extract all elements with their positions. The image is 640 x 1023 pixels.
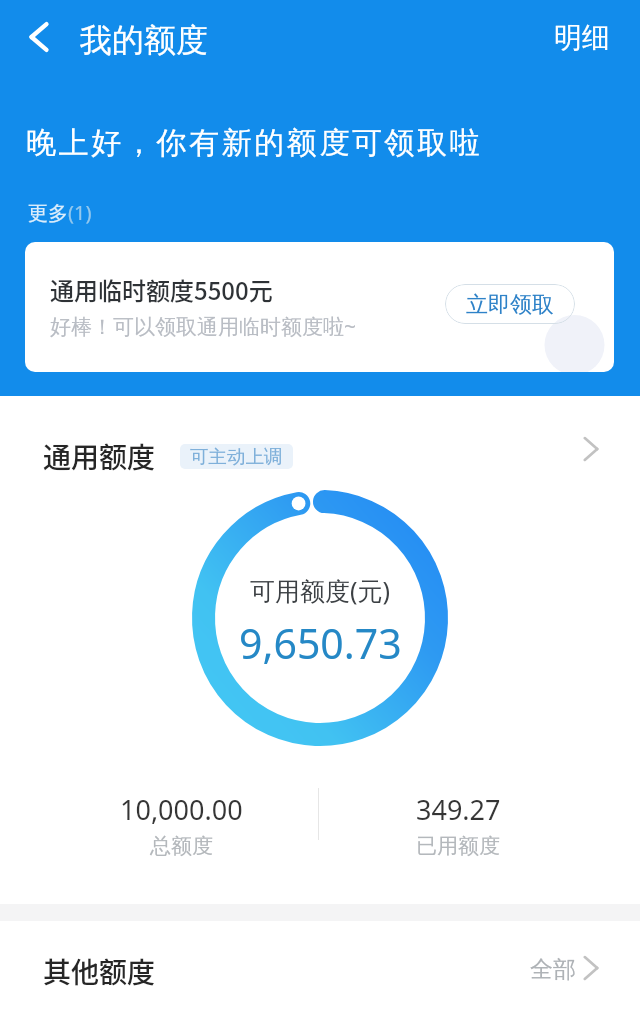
staticText: 通用额度 bbox=[43, 436, 156, 477]
button[interactable]: 其他额度 bbox=[0, 921, 640, 1023]
staticText: 全部 bbox=[530, 955, 576, 984]
other: View general credit limit bbox=[579, 437, 603, 461]
staticText: 其他额度 bbox=[43, 951, 156, 992]
staticText: 349.27 bbox=[416, 791, 501, 828]
other: View all other limits bbox=[579, 956, 603, 980]
staticText: 9,650.73 bbox=[239, 615, 402, 671]
button[interactable]: 通用额度 bbox=[0, 396, 640, 490]
staticText: (1) bbox=[68, 199, 92, 226]
staticText: 立即领取 bbox=[466, 291, 554, 319]
staticText: 我的额度 bbox=[80, 20, 208, 60]
staticText: 总额度 bbox=[150, 833, 213, 859]
button[interactable]: 明细 bbox=[530, 0, 640, 74]
button[interactable]: 通用临时额度5500元 bbox=[25, 242, 614, 372]
button[interactable]: 立即领取 bbox=[445, 284, 575, 324]
staticText: 可主动上调 bbox=[190, 445, 283, 468]
button[interactable]: Back bbox=[0, 0, 78, 74]
button[interactable]: 更多 bbox=[18, 191, 106, 234]
staticText: 通用临时额度5500元 bbox=[50, 272, 273, 307]
staticText: 10,000.00 bbox=[120, 791, 243, 828]
staticText: 好棒！可以领取通用临时额度啦~ bbox=[50, 312, 357, 341]
staticText: 晚上好，你有新的额度可领取啦 bbox=[26, 124, 483, 162]
staticText: 明细 bbox=[554, 20, 610, 55]
staticText: 已用额度 bbox=[416, 833, 500, 859]
staticText: 更多 bbox=[28, 201, 68, 226]
staticText: 可用额度(元) bbox=[250, 573, 391, 607]
